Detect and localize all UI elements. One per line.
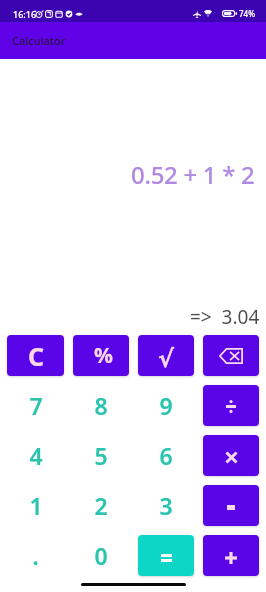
staticText: 4 — [29, 440, 43, 471]
button[interactable]: 2 — [73, 485, 129, 526]
staticText: 3 — [159, 490, 173, 521]
button[interactable]: 3 — [138, 485, 194, 526]
staticText: . — [32, 539, 39, 572]
staticText: 8 — [94, 390, 108, 421]
staticText: 0 — [94, 540, 108, 571]
button[interactable]: Percent — [73, 335, 129, 376]
button[interactable]: 6 — [138, 435, 194, 476]
button[interactable]: 8 — [73, 385, 129, 426]
button[interactable]: 4 — [7, 435, 64, 476]
button[interactable]: Decimal point — [7, 535, 64, 576]
button[interactable]: Minus — [203, 485, 259, 526]
button[interactable]: Backspace — [203, 335, 259, 376]
staticText: 16:16 — [13, 8, 37, 20]
button[interactable]: Divide — [203, 385, 259, 426]
staticText: 5 — [94, 440, 108, 471]
staticText: 74% — [239, 8, 255, 19]
staticText: 0.52 + 1 * 2 — [131, 158, 255, 191]
staticText: 1 — [29, 490, 43, 521]
button[interactable]: Equals — [138, 535, 194, 576]
button[interactable]: Multiply — [203, 435, 259, 476]
staticText: 2 — [94, 490, 108, 521]
staticText: 6 — [159, 440, 173, 471]
staticText: 7 — [29, 390, 43, 421]
staticText: => 3.04 — [190, 304, 260, 330]
staticText: C — [28, 339, 45, 373]
staticText: % — [94, 341, 113, 370]
button[interactable]: Plus — [203, 535, 259, 576]
button[interactable]: Square root — [138, 335, 194, 376]
button[interactable]: 9 — [138, 385, 194, 426]
staticText: √ — [158, 345, 175, 373]
button[interactable]: 7 — [7, 385, 64, 426]
button[interactable]: 1 — [7, 485, 64, 526]
staticText: Calculator — [12, 33, 66, 48]
button[interactable]: Clear — [7, 335, 64, 376]
staticText: 9 — [159, 390, 173, 421]
button[interactable]: 0 — [73, 535, 129, 576]
button[interactable]: 5 — [73, 435, 129, 476]
